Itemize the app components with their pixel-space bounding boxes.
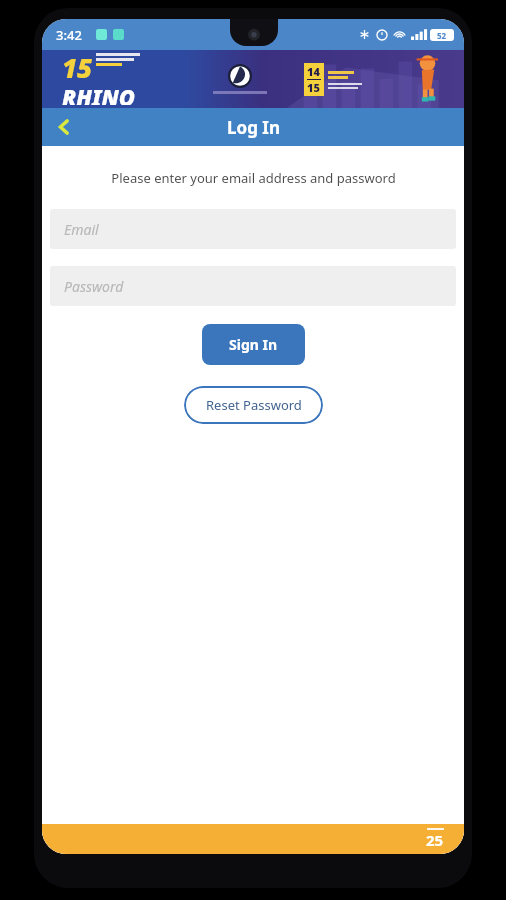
staticText: Please enter your email address and pass… bbox=[111, 169, 396, 187]
staticText: Sign In bbox=[229, 335, 278, 354]
staticText: 52 bbox=[437, 30, 447, 41]
staticText: Log In bbox=[227, 116, 280, 139]
staticText: 14 bbox=[307, 64, 320, 79]
button[interactable]: Password bbox=[50, 266, 456, 306]
staticText: 3:42 bbox=[56, 26, 82, 44]
button[interactable]: Reset Password bbox=[184, 386, 323, 424]
staticText: Email bbox=[64, 220, 99, 239]
staticText: Password bbox=[64, 277, 124, 296]
button[interactable]: Back bbox=[42, 108, 86, 146]
button[interactable]: Email bbox=[50, 209, 456, 249]
staticText: RHINO bbox=[62, 82, 135, 105]
staticText: 15 bbox=[62, 50, 93, 85]
staticText: Reset Password bbox=[206, 396, 302, 414]
staticText: 15 bbox=[307, 80, 320, 95]
staticText: 25 bbox=[426, 830, 444, 850]
button[interactable]: Sign In bbox=[202, 324, 305, 365]
